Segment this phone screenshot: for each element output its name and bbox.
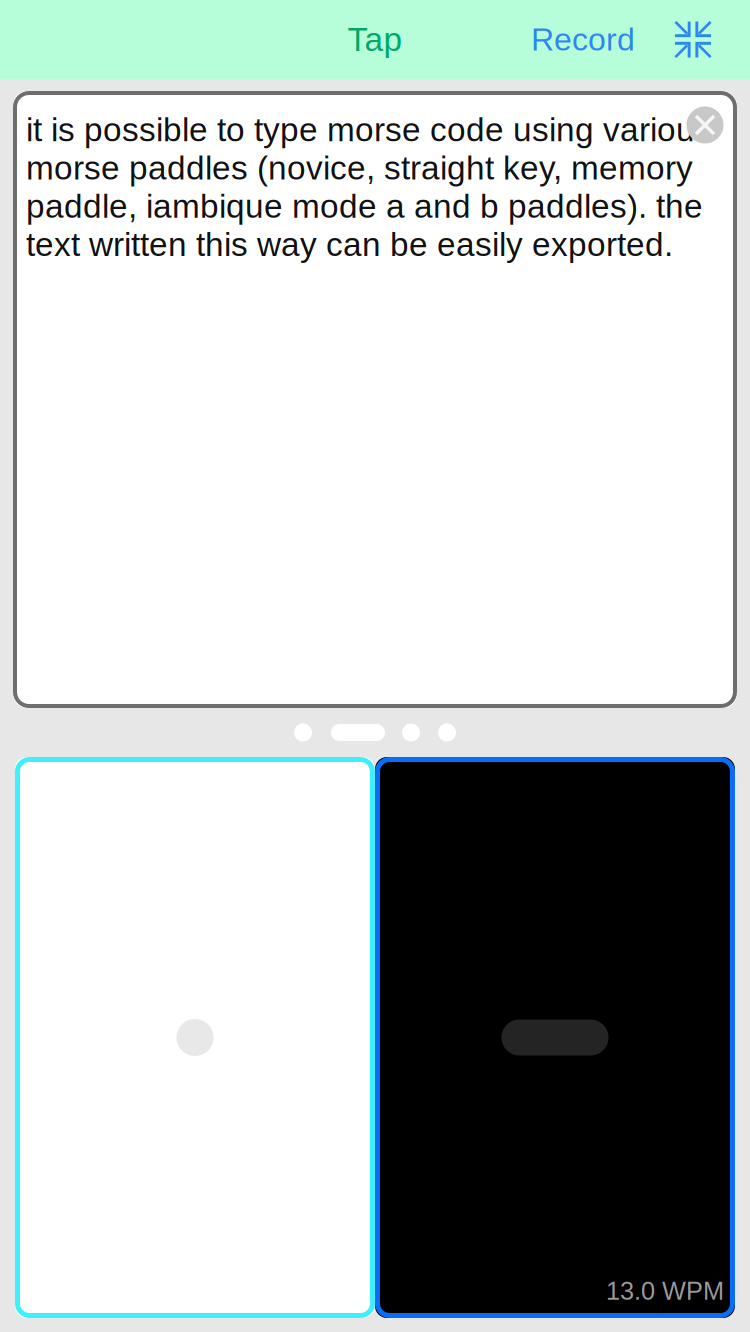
staticText: Tap — [347, 21, 402, 58]
button[interactable]: Clear text — [678, 98, 732, 152]
button[interactable]: Dash paddle — [375, 757, 735, 1318]
staticText: paddle, iambique mode a and b paddles). … — [26, 187, 703, 225]
staticText: morse paddles (novice, straight key, mem… — [26, 149, 693, 186]
button[interactable]: Tap — [332, 11, 418, 67]
button[interactable]: Dot paddle — [15, 757, 375, 1318]
button[interactable]: Collapse keyboard — [665, 11, 721, 67]
staticText: 13.0 WPM — [606, 1277, 724, 1305]
staticText: text written this way can be easily expo… — [26, 226, 673, 263]
staticText: it is possible to type morse code using … — [26, 111, 712, 148]
staticText: Record — [531, 22, 635, 57]
button[interactable]: Record — [528, 11, 638, 67]
